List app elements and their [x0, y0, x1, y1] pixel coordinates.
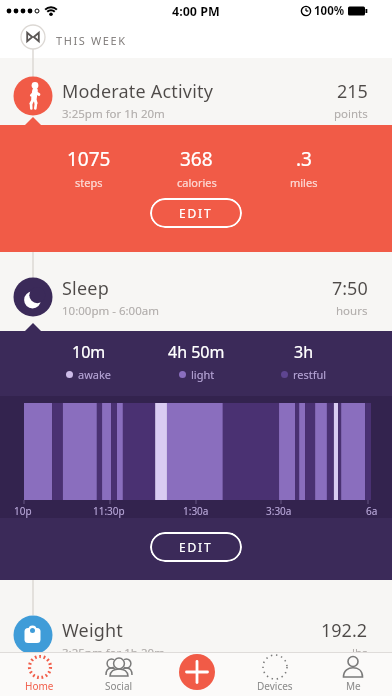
staticText: Devices — [257, 679, 293, 693]
staticText: 4:00 PM — [172, 3, 220, 20]
staticText: 3:25pm for 1h 20m — [62, 106, 165, 122]
staticText: Social — [105, 679, 133, 693]
staticText: Sleep — [62, 276, 109, 301]
staticText: 100% — [314, 3, 345, 19]
staticText: lbs — [352, 645, 368, 652]
staticText: 4h 50m — [168, 341, 225, 363]
staticText: awake — [78, 367, 112, 382]
button[interactable] — [179, 654, 215, 690]
button[interactable]: Home — [0, 652, 79, 696]
staticText: 3:25pm for 1h 20m — [62, 645, 165, 652]
staticText: Moderate Activity — [62, 79, 214, 104]
staticText: 11:30p — [93, 504, 125, 518]
button[interactable]: Devices — [236, 652, 314, 696]
staticText: .3 — [296, 146, 312, 172]
staticText: 368 — [180, 146, 213, 172]
staticText: 215 — [337, 79, 368, 104]
staticText: EDIT — [179, 539, 213, 555]
button[interactable]: Me — [314, 652, 392, 696]
button[interactable]: Sleep — [0, 252, 392, 331]
button[interactable]: THIS WEEK — [0, 22, 392, 58]
staticText: 7:50 — [332, 276, 368, 301]
button[interactable]: Moderate Activity — [0, 58, 392, 125]
staticText: 10p — [14, 504, 32, 518]
staticText: calories — [177, 175, 217, 190]
staticText: restful — [293, 367, 327, 382]
staticText: 3:30a — [266, 504, 292, 518]
staticText: Home — [25, 679, 54, 693]
button[interactable]: EDIT — [150, 198, 242, 228]
staticText: 1:30a — [183, 504, 209, 518]
staticText: Weight — [62, 618, 124, 643]
staticText: 10m — [72, 341, 106, 363]
staticText: THIS WEEK — [56, 33, 127, 48]
staticText: 6a — [366, 504, 378, 518]
staticText: 192.2 — [321, 618, 368, 643]
staticText: 3h — [294, 341, 314, 363]
staticText: points — [334, 106, 368, 122]
staticText: hours — [336, 303, 368, 319]
staticText: miles — [290, 175, 318, 190]
staticText: 10:00pm - 6:00am — [62, 303, 159, 319]
staticText: Me — [346, 679, 361, 693]
button[interactable]: EDIT — [150, 532, 242, 562]
staticText: light — [191, 367, 215, 382]
staticText: EDIT — [179, 205, 213, 221]
button[interactable]: Social — [79, 652, 158, 696]
button[interactable]: Weight — [0, 580, 392, 652]
staticText: steps — [75, 175, 103, 190]
staticText: 1075 — [67, 146, 111, 172]
